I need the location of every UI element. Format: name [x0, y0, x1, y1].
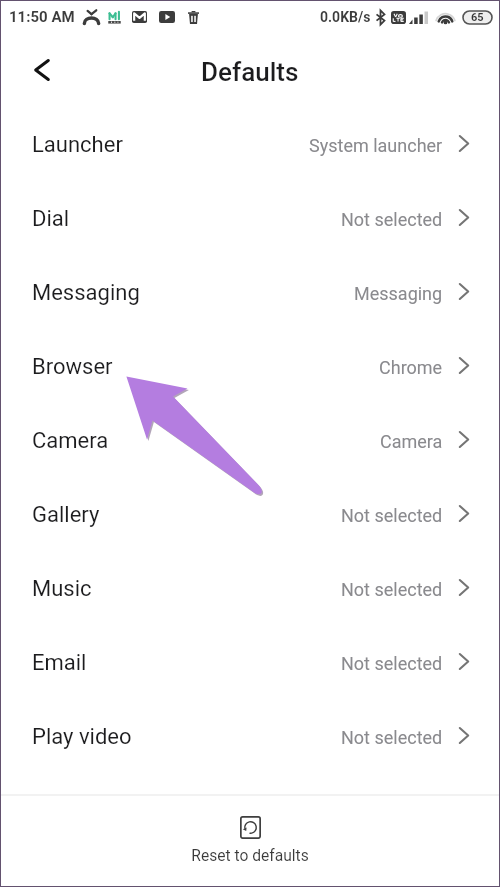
staticText: Camera: [32, 428, 109, 454]
button[interactable]: Back: [21, 49, 63, 91]
button[interactable]: Browser: [1, 333, 499, 407]
staticText: Not selected: [341, 653, 443, 674]
staticText: Play video: [32, 724, 132, 750]
staticText: 11:50 AM: [9, 8, 75, 26]
staticText: Music: [32, 576, 92, 602]
staticText: Browser: [32, 354, 113, 380]
button[interactable]: Gallery: [1, 481, 499, 555]
staticText: Messaging: [32, 280, 140, 306]
staticText: Chrome: [379, 357, 443, 378]
button[interactable]: Launcher: [1, 111, 499, 185]
staticText: Not selected: [341, 209, 443, 230]
button[interactable]: Email: [1, 629, 499, 703]
staticText: 65: [471, 11, 484, 24]
staticText: 0.0KB/s: [320, 9, 371, 25]
button[interactable]: Music: [1, 555, 499, 629]
staticText: Defaults: [201, 57, 299, 87]
staticText: Not selected: [341, 579, 443, 600]
staticText: Email: [32, 650, 87, 676]
button[interactable]: Reset to defaults: [1, 794, 499, 886]
button[interactable]: Play video: [1, 703, 499, 777]
staticText: Dial: [32, 206, 70, 232]
button[interactable]: Camera: [1, 407, 499, 481]
staticText: System launcher: [309, 135, 443, 156]
button[interactable]: Messaging: [1, 259, 499, 333]
staticText: Gallery: [32, 502, 100, 528]
staticText: Not selected: [341, 505, 443, 526]
button[interactable]: Dial: [1, 185, 499, 259]
staticText: Reset to defaults: [191, 847, 309, 865]
staticText: Launcher: [32, 132, 123, 158]
staticText: Camera: [380, 431, 443, 452]
staticText: Not selected: [341, 727, 443, 748]
staticText: Messaging: [354, 283, 443, 304]
